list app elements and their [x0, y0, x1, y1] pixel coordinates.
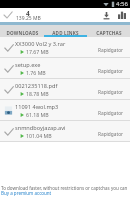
staticText: Rapidgator — [98, 89, 124, 96]
button[interactable]: 11091 4wol.mp3 — [0, 100, 130, 120]
button[interactable]: snmndboyjazap.avi — [0, 121, 130, 141]
staticText: To download faster, without restrictions… — [1, 185, 128, 191]
staticText: Rapidgator — [98, 47, 124, 54]
button[interactable]: Buy a premium account — [1, 190, 52, 196]
staticText: ADD LINKS — [52, 30, 79, 36]
staticText: 101.04 MB — [26, 132, 52, 139]
button[interactable]: Sort — [114, 8, 129, 22]
button[interactable]: CAPTCHAS — [87, 25, 130, 37]
button[interactable]: XX3000 Vol2 y 3.rar — [0, 37, 130, 57]
staticText: Buy a premium account — [1, 190, 52, 196]
staticText: 1.76 MB — [26, 69, 46, 76]
button[interactable]: 0021235118.pdf — [0, 79, 130, 99]
staticText: Rapidgator — [98, 68, 124, 75]
staticText: 0021235118.pdf — [15, 82, 58, 90]
staticText: setup.exe — [15, 61, 41, 69]
staticText: DOWNLOADS — [6, 30, 39, 36]
staticText: 17.67 MB — [26, 48, 49, 55]
staticText: 18.78 MB — [26, 90, 49, 97]
staticText: 4:56 — [116, 0, 128, 8]
button[interactable]: ADD LINKS — [44, 25, 87, 37]
staticText: 61.18 MB — [26, 111, 49, 118]
staticText: 4 — [26, 9, 30, 18]
button[interactable]: DOWNLOADS — [0, 25, 44, 37]
staticText: 139.25 MB — [16, 15, 41, 22]
staticText: XX3000 Vol2 y 3.rar — [15, 40, 66, 48]
button[interactable]: Download — [99, 8, 114, 22]
staticText: Rapidgator — [98, 110, 124, 117]
staticText: snmndboyjazap.avi — [15, 124, 66, 132]
staticText: CAPTCHAS — [96, 30, 122, 36]
staticText: Rapidgator — [98, 131, 124, 138]
button[interactable]: setup.exe — [0, 58, 130, 78]
staticText: 11091 4wol.mp3 — [15, 103, 59, 111]
